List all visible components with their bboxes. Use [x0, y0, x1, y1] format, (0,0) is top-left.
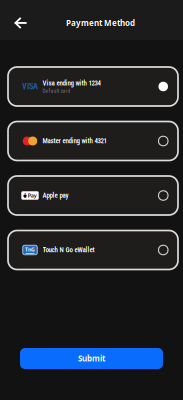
staticText: Pay	[28, 192, 37, 199]
staticText: Default card	[42, 88, 70, 94]
button[interactable]: Submit	[20, 348, 163, 369]
staticText: VISA	[22, 82, 38, 91]
button[interactable]: Back	[0, 9, 37, 37]
staticText: Payment Method	[66, 18, 135, 28]
button[interactable]: Master ending with 4321	[8, 121, 178, 160]
staticText: TnG	[25, 246, 35, 253]
button[interactable]: Pay	[8, 176, 178, 215]
button[interactable]: TnG	[8, 230, 178, 269]
staticText: Touch N Go eWallet	[42, 246, 94, 254]
staticText: Visa ending with 1234	[42, 79, 100, 87]
staticText: Submit	[78, 353, 105, 364]
staticText: Apple pay	[42, 191, 68, 199]
button[interactable]: VISA	[8, 67, 178, 106]
staticText: Master ending with 4321	[42, 137, 106, 145]
